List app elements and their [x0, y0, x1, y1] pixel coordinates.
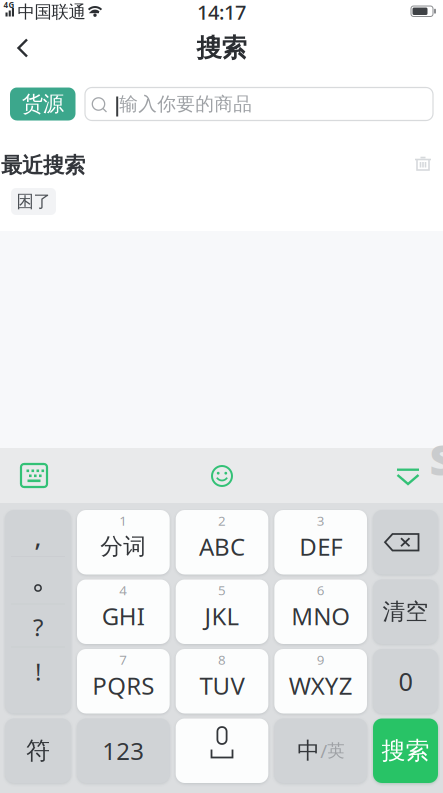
button[interactable]: 7: [77, 649, 170, 713]
staticText: ABC: [199, 531, 245, 562]
button[interactable]: 搜索: [373, 718, 438, 783]
staticText: PQRS: [92, 670, 154, 701]
staticText: TUV: [199, 670, 244, 701]
button[interactable]: 1: [77, 510, 170, 574]
button[interactable]: 2: [176, 510, 268, 574]
staticText: 搜索: [196, 32, 246, 63]
staticText: 4: [119, 581, 127, 599]
button[interactable]: 清空: [373, 579, 438, 644]
button[interactable]: 9: [274, 649, 367, 713]
staticText: 6: [317, 581, 325, 599]
staticText: !: [35, 656, 41, 687]
button[interactable]: 收起键盘: [396, 468, 420, 485]
staticText: 8: [218, 651, 226, 668]
staticText: 输入你要的商品: [119, 92, 252, 115]
staticText: ?: [33, 611, 43, 643]
staticText: 3: [317, 512, 325, 529]
button[interactable]: 123: [77, 718, 170, 783]
button[interactable]: 困了: [11, 188, 56, 215]
staticText: 123: [102, 735, 144, 767]
button[interactable]: 符: [5, 718, 71, 783]
button[interactable]: Back: [16, 37, 36, 58]
staticText: WXYZ: [289, 670, 353, 701]
staticText: 9: [317, 651, 325, 668]
staticText: 2: [218, 512, 226, 529]
button[interactable]: 6: [274, 579, 367, 644]
staticText: ,: [34, 520, 41, 554]
button[interactable]: 标点: [5, 510, 71, 713]
button[interactable]: 清除搜索记录: [414, 155, 431, 171]
staticText: DEF: [299, 531, 342, 562]
staticText: 搜索: [381, 736, 429, 765]
button[interactable]: 搜索输入框: [85, 87, 433, 120]
staticText: JKL: [204, 600, 239, 632]
staticText: 7: [119, 651, 127, 668]
button[interactable]: 5: [176, 579, 268, 644]
button[interactable]: 语音输入: [176, 718, 268, 783]
button[interactable]: 8: [176, 649, 268, 713]
staticText: 分词: [100, 533, 146, 560]
button[interactable]: 删除: [373, 510, 438, 574]
staticText: /: [320, 738, 327, 763]
staticText: 符: [26, 736, 50, 765]
button[interactable]: 中英文切换: [274, 718, 367, 783]
staticText: 货源: [22, 91, 64, 117]
staticText: 5: [218, 581, 226, 599]
button[interactable]: 表情: [211, 465, 233, 487]
staticText: 中国联通: [17, 1, 85, 23]
button[interactable]: 3: [274, 510, 367, 574]
staticText: 英: [327, 740, 344, 761]
staticText: 1: [119, 512, 127, 529]
button[interactable]: 切换键盘: [21, 464, 47, 487]
staticText: 困了: [16, 191, 50, 212]
staticText: MNO: [291, 600, 350, 632]
button[interactable]: 0: [373, 649, 438, 713]
button[interactable]: 货源: [10, 87, 75, 120]
staticText: 清空: [382, 598, 428, 626]
staticText: GHI: [102, 600, 145, 632]
staticText: 中: [297, 737, 320, 765]
button[interactable]: 4: [77, 579, 170, 644]
staticText: 最近搜索: [1, 152, 85, 179]
staticText: 0: [398, 664, 412, 698]
staticText: S: [429, 431, 443, 487]
staticText: 4G: [3, 0, 14, 10]
staticText: 14:17: [197, 0, 246, 25]
